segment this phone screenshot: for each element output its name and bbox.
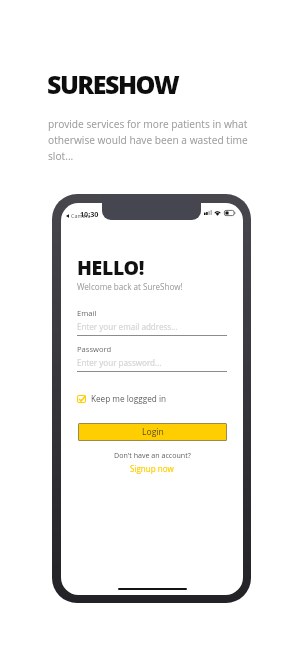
staticText: Login (142, 426, 164, 438)
staticText: Password (77, 344, 112, 354)
button[interactable]: Signup now (130, 463, 174, 474)
staticText: provide services for more patients in wh… (48, 117, 251, 163)
button[interactable]: Login (79, 424, 226, 440)
staticText: Email (77, 308, 97, 318)
staticText: Welcome back at SureShow! (77, 281, 183, 292)
staticText: SURESHOW (47, 67, 179, 101)
staticText: 10:30 (80, 209, 99, 219)
staticText: Enter your password... (77, 357, 162, 368)
staticText: Camera (71, 212, 91, 219)
staticText: HELLO! (77, 254, 145, 281)
staticText: Keep me loggged in (91, 393, 166, 404)
staticText: Enter your email address... (77, 321, 178, 332)
button[interactable]: Keep me loggged in (77, 393, 166, 404)
staticText: Don't have an account? (114, 450, 191, 460)
